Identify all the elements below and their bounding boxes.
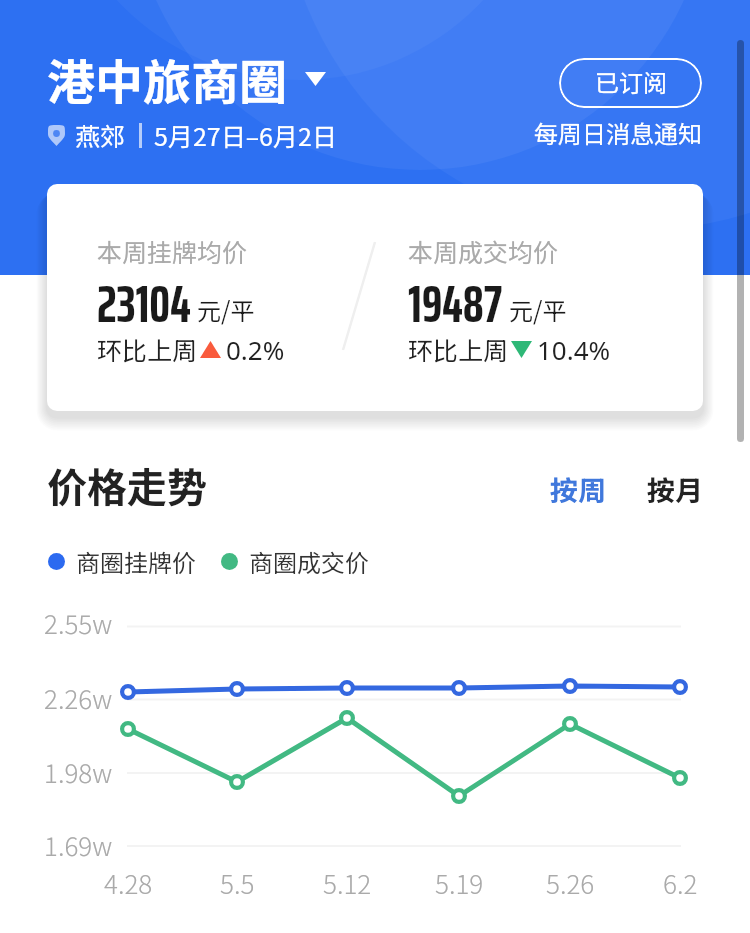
button[interactable]: 按月 <box>643 466 708 513</box>
staticText: 1.69w <box>44 826 113 864</box>
button[interactable]: 切换商圈 港中旅商圈 <box>47 44 326 114</box>
other: 上涨 <box>200 341 221 358</box>
other: 下跌 <box>511 341 532 358</box>
button[interactable]: 本周挂牌均价 <box>47 184 703 411</box>
other: 位置 <box>48 125 65 146</box>
button[interactable]: 价格走势 <box>47 456 207 514</box>
staticText: 每周日消息通知 <box>534 115 702 150</box>
staticText: 已订阅 <box>595 64 667 99</box>
staticText: 2.26w <box>44 679 113 717</box>
button[interactable]: 商圈挂牌价 <box>48 544 196 579</box>
staticText: 6.2 <box>663 864 698 902</box>
staticText: 本周成交均价 <box>408 233 559 269</box>
staticText: 元/平 <box>509 292 567 327</box>
staticText: 商圈成交价 <box>249 544 369 579</box>
staticText: 5月27日–6月2日 <box>154 117 337 153</box>
staticText: 0.2% <box>226 332 285 367</box>
button[interactable]: 商圈成交价 <box>221 544 369 579</box>
staticText: 5.26 <box>546 864 595 902</box>
staticText: 环比上周 <box>97 331 198 367</box>
staticText: 商圈挂牌价 <box>76 544 196 579</box>
staticText: 19487 <box>408 263 503 345</box>
staticText: 价格走势 <box>47 456 207 514</box>
staticText: 燕郊 <box>75 117 126 153</box>
staticText: 23104 <box>97 263 191 345</box>
staticText: 5.12 <box>323 864 372 902</box>
button[interactable]: 已订阅 <box>559 58 702 108</box>
staticText: 环比上周 <box>408 331 509 367</box>
staticText: 10.4% <box>537 332 611 367</box>
button[interactable]: 按周 <box>546 466 611 513</box>
staticText: 港中旅商圈 <box>47 44 288 114</box>
staticText: 2.55w <box>44 604 113 642</box>
staticText: 按周 <box>550 469 607 510</box>
staticText: 5.5 <box>220 864 255 902</box>
staticText: 按月 <box>647 469 704 510</box>
staticText: 5.19 <box>435 864 484 902</box>
staticText: 元/平 <box>197 292 255 327</box>
staticText: 本周挂牌均价 <box>97 233 248 269</box>
staticText: 1.98w <box>44 753 113 791</box>
staticText: 4.28 <box>104 864 153 902</box>
